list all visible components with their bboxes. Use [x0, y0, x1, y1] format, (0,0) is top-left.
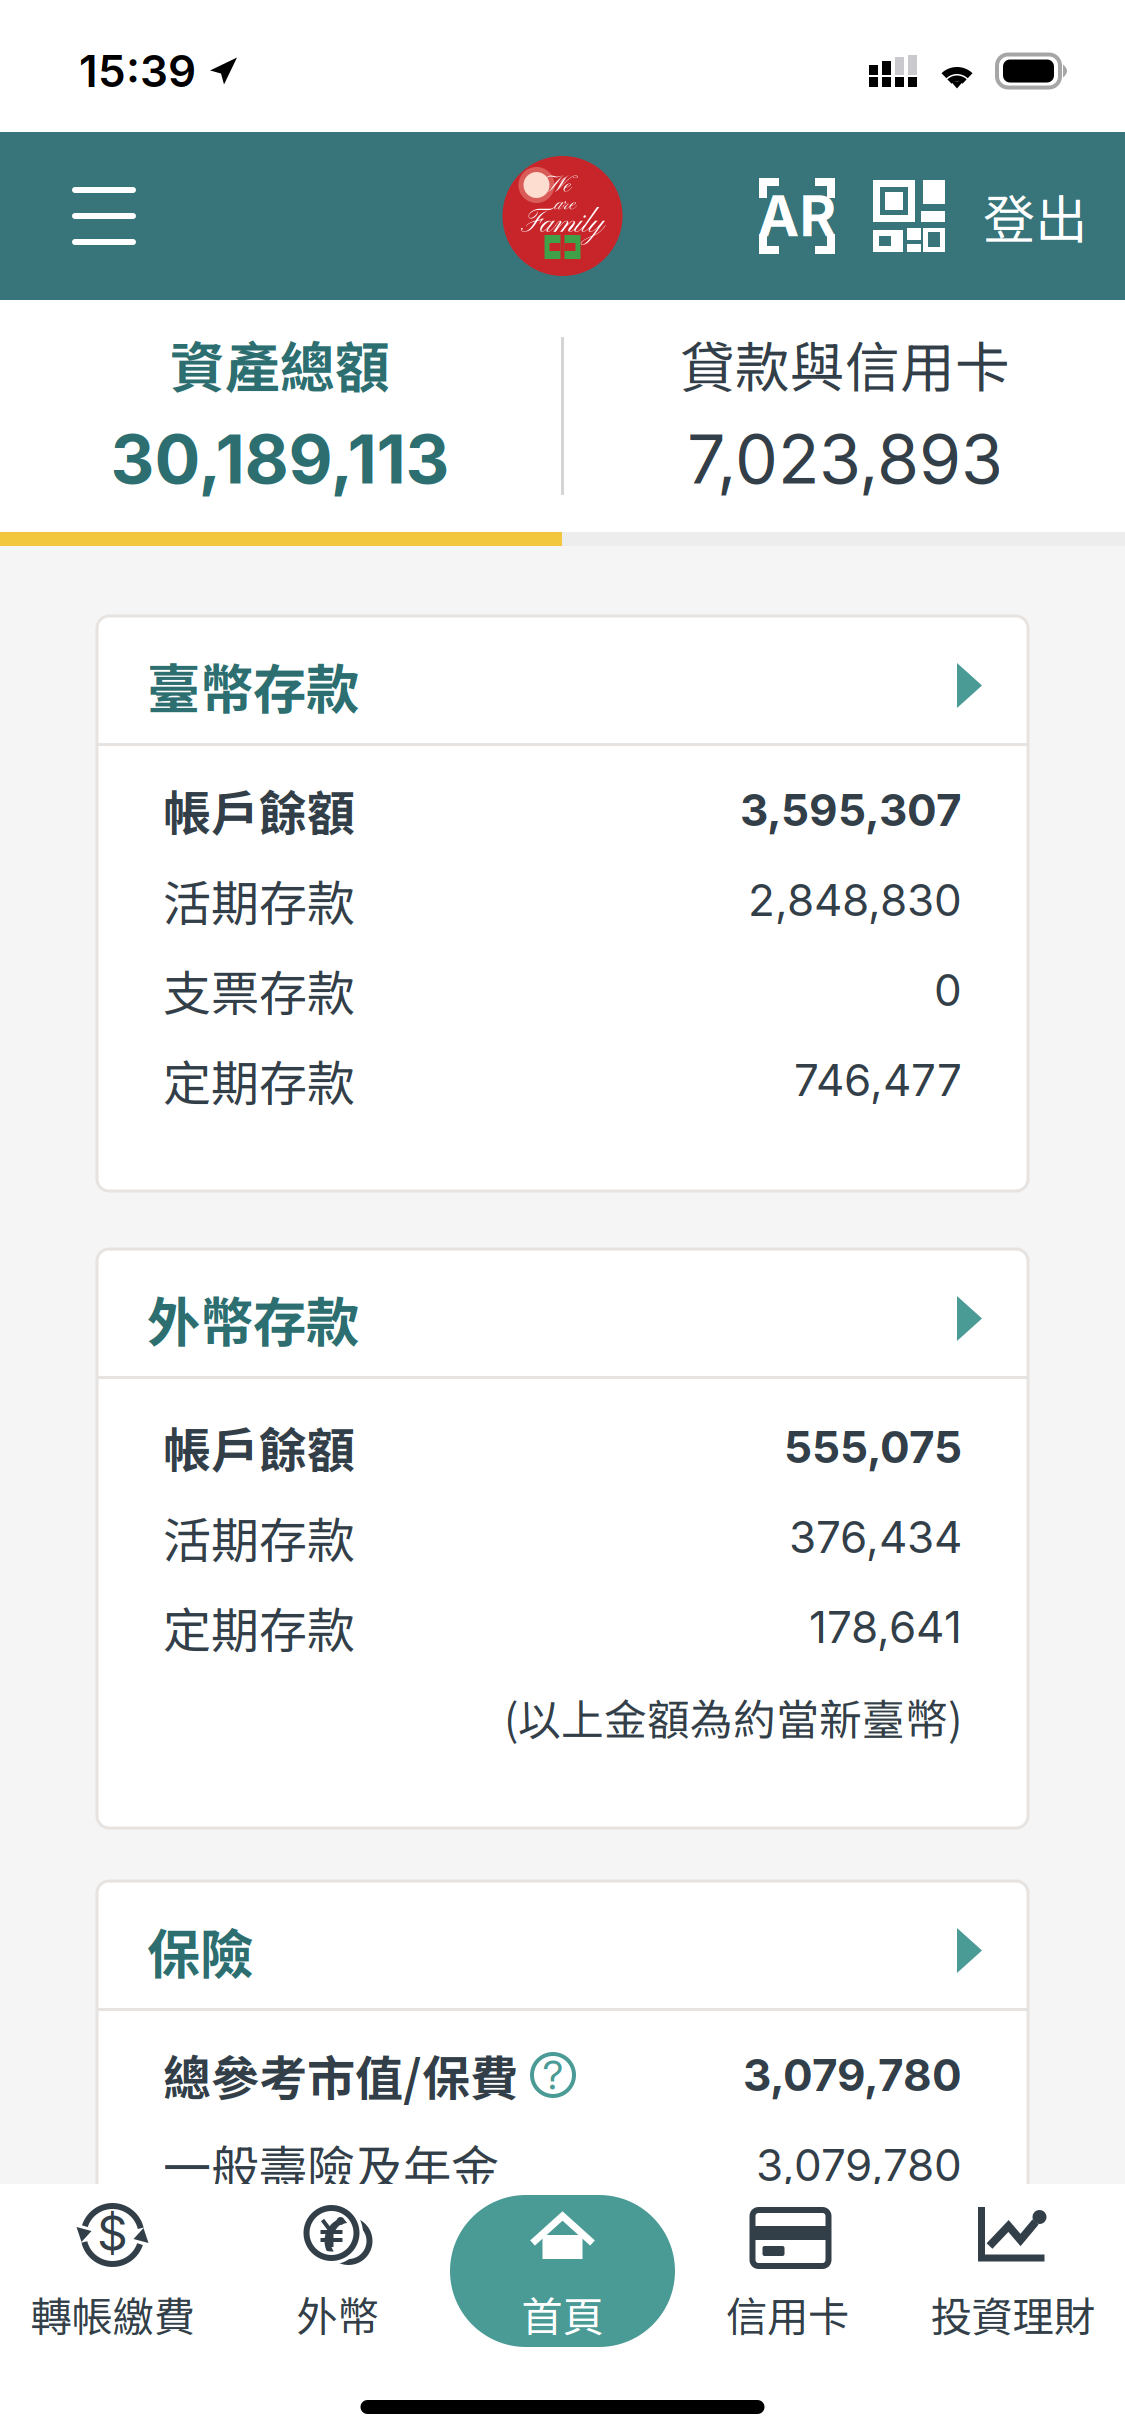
staticText: 信用卡 [726, 2284, 849, 2344]
staticText: ? [542, 2051, 563, 2099]
staticText: AR [757, 182, 836, 250]
staticText: 活期存款 [163, 865, 355, 935]
staticText: 3,079,780 [743, 2048, 962, 2102]
staticText: 定期存款 [163, 1592, 355, 1662]
button[interactable]: 信用卡 [675, 2195, 900, 2347]
staticText: 帳戶餘額 [163, 1412, 355, 1482]
button[interactable]: 登出 [945, 138, 1125, 294]
staticText: 投資理財 [930, 2284, 1094, 2344]
button[interactable]: 資產總額 [0, 300, 560, 532]
staticText: 746,477 [794, 1053, 962, 1107]
staticText: 178,641 [809, 1600, 962, 1654]
staticText: 376,434 [789, 1510, 962, 1564]
staticText: 資產總額 [170, 324, 390, 403]
staticText: 3,595,307 [740, 783, 962, 837]
staticText: 臺幣存款 [147, 647, 359, 724]
button[interactable]: 外幣存款 [97, 1249, 1028, 1376]
staticText: 3,079,780 [756, 2138, 962, 2192]
staticText: $ [97, 2204, 128, 2262]
staticText: 外幣 [296, 2284, 378, 2344]
button[interactable]: 臺幣存款 [97, 616, 1028, 743]
staticText: (以上金額為約當新臺幣) [504, 1686, 962, 1748]
staticText: 0 [934, 963, 962, 1017]
staticText: 2,848,830 [748, 873, 962, 927]
button[interactable]: 保險 [97, 1881, 1028, 2008]
staticText: 30,189,113 [110, 418, 449, 500]
button[interactable]: 外幣 [225, 2195, 450, 2347]
button[interactable]: QR code scanner [835, 132, 945, 300]
button[interactable]: $ [0, 2195, 225, 2347]
staticText: 保險 [147, 1912, 253, 1989]
staticText: We [544, 172, 570, 200]
staticText: 一般壽險及年金 [163, 2130, 499, 2200]
staticText: 7,023,893 [687, 418, 1003, 500]
staticText: 支票存款 [163, 955, 355, 1025]
staticText: are [554, 192, 575, 217]
staticText: 帳戶餘額 [163, 775, 355, 845]
button[interactable]: Menu [0, 132, 176, 300]
staticText: 轉帳繳費 [30, 2284, 194, 2344]
button[interactable]: 貸款與信用卡 [565, 300, 1125, 532]
staticText: 總參考市值/保費 [163, 2040, 518, 2110]
staticText: 15:39 [79, 44, 196, 98]
staticText: 首頁 [521, 2284, 603, 2344]
staticText: Family [520, 204, 603, 244]
button[interactable]: AR [759, 132, 835, 300]
button[interactable]: 投資理財 [900, 2195, 1125, 2347]
staticText: 555,075 [784, 1420, 962, 1474]
staticText: 登出 [983, 178, 1087, 254]
button[interactable]: 首頁 [450, 2195, 675, 2347]
staticText: 定期存款 [163, 1045, 355, 1115]
staticText: 貸款與信用卡 [680, 324, 1010, 403]
staticText: 外幣存款 [147, 1280, 359, 1357]
staticText: 活期存款 [163, 1502, 355, 1572]
